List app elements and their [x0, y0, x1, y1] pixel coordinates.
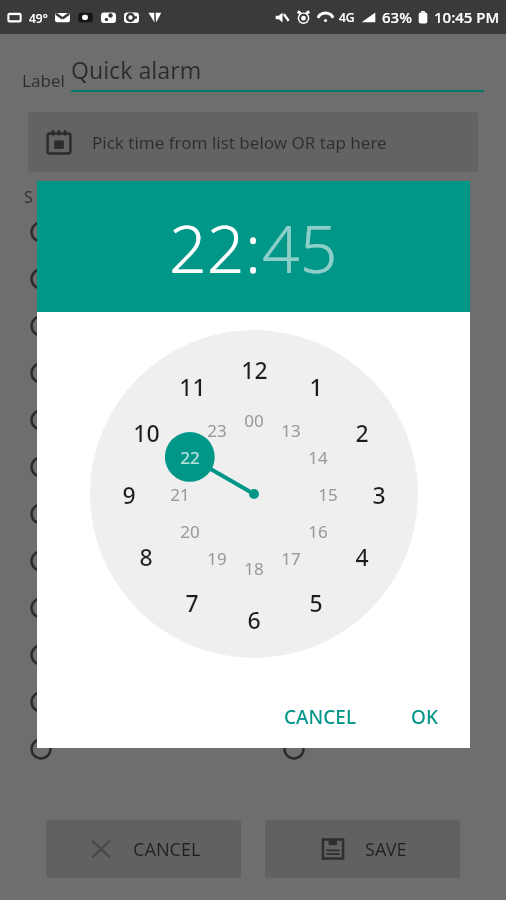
button[interactable]: 30 minutes [0, 443, 506, 490]
staticText: CANCEL [284, 704, 357, 730]
staticText: 22 [180, 446, 200, 469]
button[interactable] [0, 725, 506, 772]
button[interactable]: SAVE [265, 820, 460, 878]
staticText: 5 [309, 587, 323, 618]
staticText: 7 [185, 587, 199, 618]
staticText: 10:50 PM [319, 220, 393, 243]
button[interactable]: 10 minutes [0, 255, 506, 302]
staticText: 11:20 PM [319, 455, 393, 478]
button[interactable]: CANCEL [46, 820, 241, 878]
staticText: : [245, 202, 262, 292]
staticText: 11:40 PM [319, 596, 393, 619]
staticText: 25 minutes [66, 408, 156, 431]
button[interactable]: 55 minutes [0, 631, 506, 678]
staticText: 9 [122, 479, 136, 510]
button[interactable]: 5 minutes [0, 208, 506, 255]
staticText: 45 minutes [66, 549, 156, 572]
staticText: 3 [372, 479, 386, 510]
staticText: 13 [281, 419, 301, 442]
staticText: 11:15 PM [319, 408, 393, 431]
staticText: 17 [281, 547, 301, 570]
staticText: 11:35 PM [319, 549, 393, 572]
button[interactable]: Pick time from list below OR tap here [28, 112, 478, 172]
button[interactable]: 20 minutes [0, 349, 506, 396]
staticText: 10:45 PM [434, 7, 500, 27]
staticText: 2 [355, 417, 369, 448]
staticText: 30 minutes [66, 455, 156, 478]
button[interactable]: 45 minutes [0, 537, 506, 584]
staticText: OK [411, 704, 438, 730]
staticText: CANCEL [133, 837, 201, 862]
staticText: 8 [139, 541, 153, 572]
staticText: 11 [179, 371, 206, 402]
staticText: 11:30 PM [319, 502, 393, 525]
staticText: 21 [170, 483, 190, 506]
button[interactable]: 15 minutes [0, 302, 506, 349]
staticText: 40 minutes [66, 502, 156, 525]
button[interactable]: 60 minutes [0, 678, 506, 725]
button[interactable]: 40 minutes [0, 490, 506, 537]
staticText: 63% [382, 7, 412, 27]
staticText: 6 [247, 604, 261, 635]
button[interactable]: 25 minutes [0, 396, 506, 443]
button[interactable]: 22 [169, 202, 245, 292]
staticText: 23 [207, 419, 227, 442]
staticText: 14 [308, 446, 328, 469]
staticText: 16 [308, 520, 328, 543]
staticText: SAVE [365, 837, 407, 862]
button[interactable]: OK [397, 696, 452, 738]
staticText: 20 [180, 520, 200, 543]
staticText: Pick time from list below OR tap here [92, 131, 387, 154]
staticText: 18 [244, 557, 264, 580]
staticText: 20 minutes [66, 361, 156, 384]
staticText: 49° [29, 10, 48, 26]
staticText: 15 [318, 483, 338, 506]
button[interactable]: 50 minutes [0, 584, 506, 631]
staticText: 1 [309, 371, 323, 402]
button[interactable]: CANCEL [270, 696, 371, 738]
button[interactable]: 45 [262, 202, 338, 292]
staticText: 00 [244, 409, 264, 432]
staticText: 4G [339, 9, 355, 25]
staticText: S [24, 186, 33, 208]
staticText: 4 [355, 541, 369, 572]
staticText: 50 minutes [66, 596, 156, 619]
staticText: 1:48 AM [319, 690, 384, 713]
staticText: 10 [133, 417, 160, 448]
staticText: 12 [241, 354, 268, 385]
staticText: 11:00 PM [319, 267, 393, 290]
staticText: 11:10 PM [319, 361, 393, 384]
staticText: 19 [207, 547, 227, 570]
staticText: Quick alarm [71, 54, 202, 85]
staticText: Label [22, 69, 65, 92]
